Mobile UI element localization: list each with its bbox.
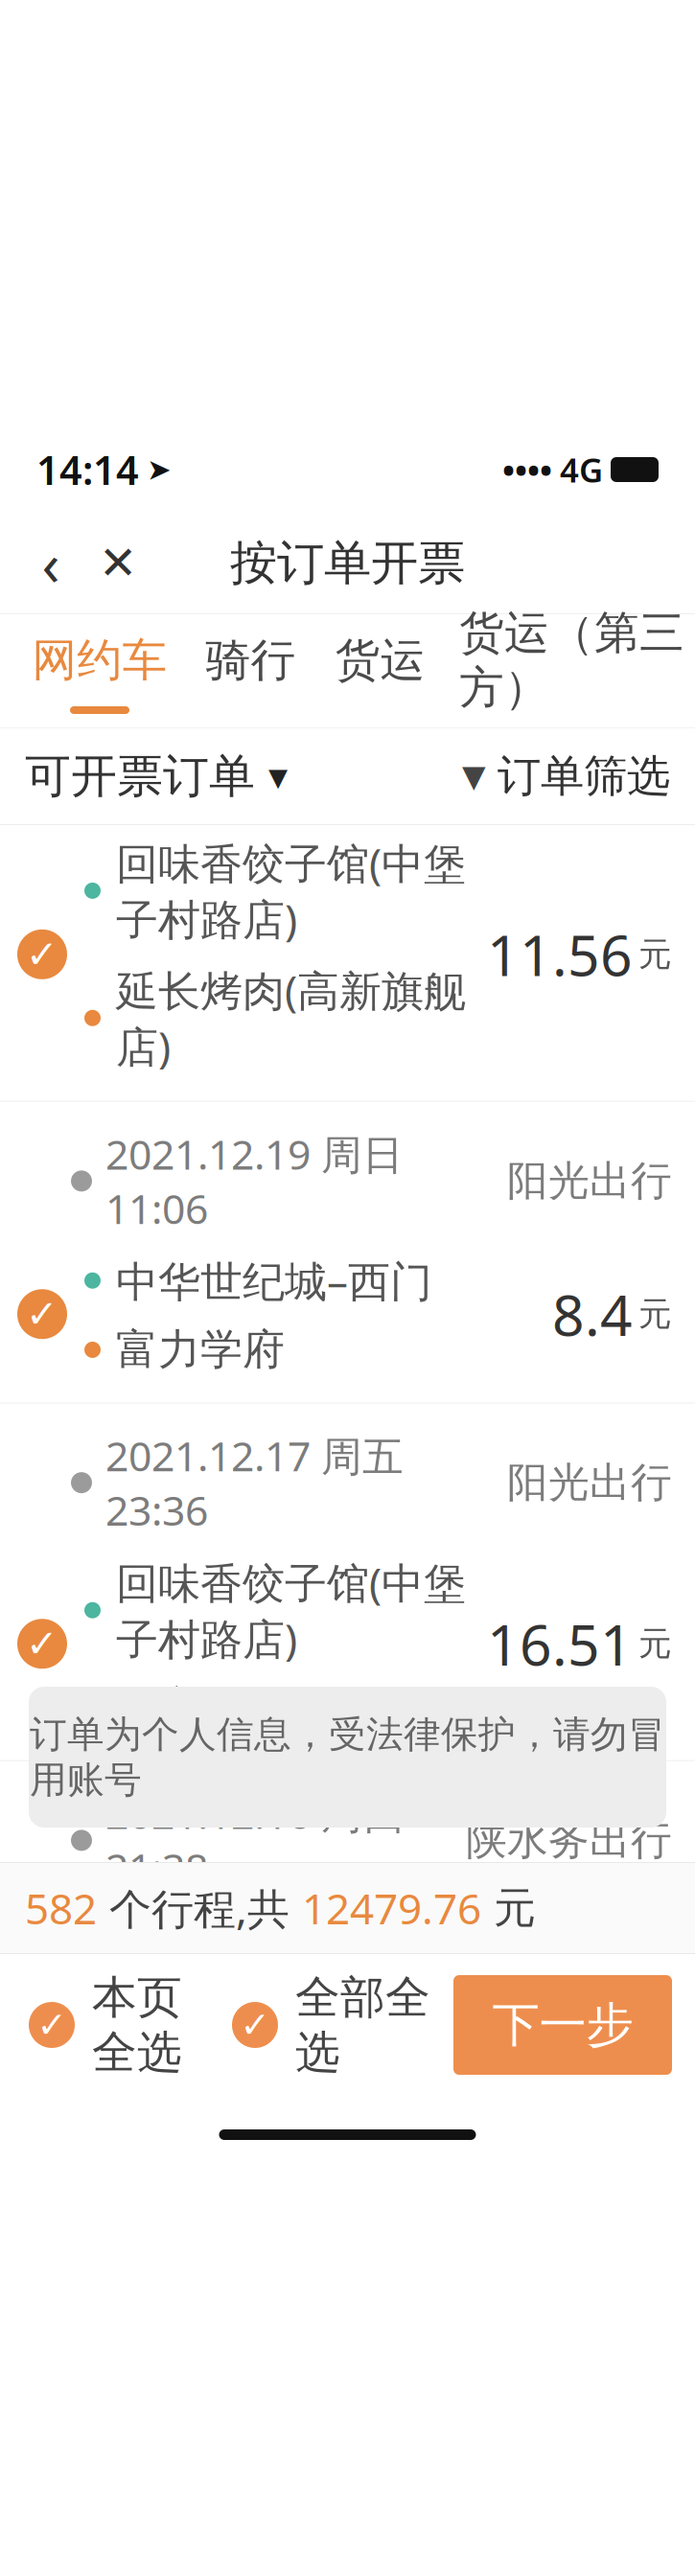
button[interactable]: 返回 <box>17 525 84 601</box>
staticText: 元 <box>638 1623 672 1664</box>
staticText: 11.56 <box>487 917 633 992</box>
button[interactable]: 2021.12.22 周三 14:16 <box>0 435 695 737</box>
staticText: 12.84 <box>487 1964 633 2039</box>
staticText: 10.36 <box>487 584 633 658</box>
button[interactable]: 2021.12.19 周日 20:50 <box>0 738 695 1101</box>
staticText: 西安大都荟 <box>116 1682 327 1733</box>
staticText: 2021.12.19 周日 11:06 <box>105 1127 404 1235</box>
staticText: 货运 <box>335 633 425 688</box>
staticText: 582 <box>25 1880 97 1936</box>
staticText: 个行程,共 <box>97 1880 302 1936</box>
button[interactable]: 2021.12.19 周日 11:06 <box>0 1102 695 1403</box>
staticText: 元 <box>638 934 672 975</box>
staticText: ➤ <box>147 453 172 486</box>
staticText: 延长烤肉(高新旗舰店) <box>116 962 466 1074</box>
staticText: 西桃园社区 <box>116 659 327 710</box>
button[interactable]: 2021.12.17 周五 23:36 <box>0 1403 695 1760</box>
button[interactable]: 骑行 <box>186 614 315 727</box>
staticText: ✕ <box>99 537 137 589</box>
staticText: 阳光出行 <box>507 1458 672 1508</box>
button[interactable]: 下一步 <box>453 1975 672 2075</box>
staticText: 中华世纪城–西门 <box>116 1253 432 1309</box>
staticText: ✓ <box>26 933 58 976</box>
staticText: 陕水务出行 <box>466 1815 672 1865</box>
staticText: ✓ <box>240 2005 270 2045</box>
staticText: 元 <box>638 1294 672 1335</box>
button[interactable]: 可开票订单 <box>25 731 288 822</box>
staticText: 回味香饺子馆(中堡子村路店) <box>116 1554 466 1666</box>
staticText: 快车 <box>590 765 672 815</box>
staticText: 订单筛选 <box>498 750 670 803</box>
button[interactable]: ✓ <box>232 1951 430 2099</box>
staticText: 下一步 <box>492 1996 633 2054</box>
staticText: ✓ <box>26 599 58 643</box>
staticText: 8.4 <box>552 1277 633 1351</box>
staticText: 快车 <box>590 462 672 512</box>
button[interactable]: 2021.12.16 周四 21:38 <box>0 1761 695 2118</box>
staticText: 骑行 <box>206 633 296 688</box>
staticText: 2021.12.22 周三 14:16 <box>105 460 517 514</box>
button[interactable]: 货运（第三方） <box>445 614 695 727</box>
staticText: 阳光出行 <box>507 1156 672 1206</box>
staticText: 本页全选 <box>92 1970 182 2080</box>
staticText: ✓ <box>26 1622 58 1666</box>
staticText: 16.51 <box>487 1606 633 1681</box>
staticText: ‹ <box>42 524 60 602</box>
staticText: 回味香饺子馆(中堡子村路店) <box>116 835 466 947</box>
staticText: 2021.12.19 周日 20:50 <box>105 763 517 817</box>
button[interactable]: 货运 <box>315 614 445 727</box>
staticText: 全部全选 <box>295 1970 430 2080</box>
staticText: 按订单开票 <box>230 534 465 592</box>
staticText: 元 <box>481 1882 536 1934</box>
staticText: 回味香饺子馆(中堡子村路店) <box>116 1912 466 2024</box>
staticText: 2021.12.17 周五 23:36 <box>105 1428 404 1537</box>
staticText: 元 <box>638 600 672 641</box>
staticText: 货运（第三方） <box>459 605 684 715</box>
staticText: 网约车 <box>32 633 167 688</box>
staticText: 14:14 <box>36 443 139 496</box>
staticText: ✓ <box>26 1292 58 1336</box>
staticText: ▾ <box>268 754 288 798</box>
staticText: ✓ <box>37 2005 67 2045</box>
staticText: ✓ <box>26 1980 58 2023</box>
button[interactable]: ▼ <box>462 732 670 820</box>
staticText: 2021.12.16 周四 21:38 <box>105 1786 404 1895</box>
staticText: 回味香饺子馆(中堡子村路店) <box>116 531 466 643</box>
staticText: •••• <box>502 448 552 492</box>
staticText: 订单为个人信息，受法律保护，请勿冒用账号 <box>30 1712 665 1803</box>
button[interactable]: ✓ <box>29 1951 182 2099</box>
staticText: 可开票订单 <box>25 748 255 805</box>
staticText: ▼ <box>462 759 486 794</box>
button[interactable]: 网约车 <box>13 614 186 727</box>
staticText: 富力学府 <box>116 1324 285 1376</box>
staticText: 4G <box>560 448 603 492</box>
staticText: 12479.76 <box>302 1880 481 1936</box>
staticText: 丽华科技大厦 <box>116 2039 369 2091</box>
button[interactable]: 关闭 <box>84 525 151 601</box>
